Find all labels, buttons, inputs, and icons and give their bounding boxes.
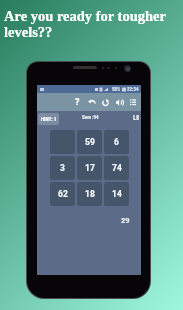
button[interactable]: Undo — [84, 93, 98, 111]
staticText: 3 — [60, 163, 65, 173]
staticText: 58% — [112, 86, 121, 92]
staticText: 17 — [85, 163, 95, 173]
button[interactable]: 62 — [50, 182, 75, 206]
staticText: L8 — [133, 114, 140, 122]
button[interactable]: Help — [71, 93, 84, 111]
button[interactable]: 14 — [104, 182, 129, 206]
staticText: 74 — [112, 163, 122, 173]
staticText: 18 — [85, 189, 95, 199]
staticText: Are you ready for tougher levels?? — [4, 8, 181, 41]
staticText: 14 — [112, 189, 122, 199]
staticText: 22:34 — [127, 86, 139, 92]
button[interactable]: Menu — [126, 93, 140, 111]
staticText: HINT: 1 — [41, 116, 57, 122]
staticText: 29 — [121, 216, 130, 225]
staticText: 62 — [58, 189, 68, 199]
button[interactable]: Sound — [112, 93, 126, 111]
button[interactable]: 3 — [50, 156, 75, 180]
staticText: 6 — [114, 137, 119, 147]
button[interactable]: 6 — [104, 130, 129, 154]
staticText: Sum :94 — [82, 114, 99, 120]
staticText: 59 — [85, 137, 95, 147]
button[interactable]: 17 — [77, 156, 102, 180]
button[interactable]: 18 — [77, 182, 102, 206]
staticText: ? — [75, 97, 80, 108]
button[interactable]: Refresh — [98, 93, 112, 111]
button[interactable]: HINT: 1 — [38, 113, 59, 125]
button[interactable]: 74 — [104, 156, 129, 180]
button[interactable]: 59 — [77, 130, 102, 154]
